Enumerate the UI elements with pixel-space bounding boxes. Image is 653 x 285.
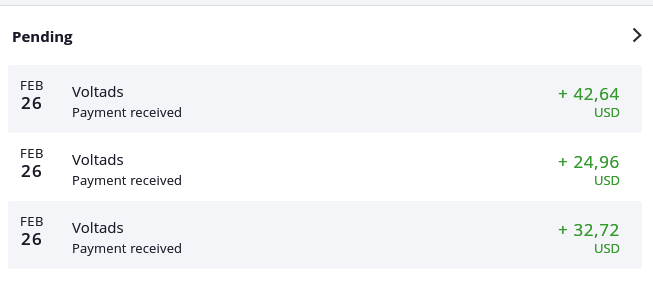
staticText: Payment received [72,103,183,121]
staticText: Voltads [72,149,124,169]
staticText: 26 [16,227,48,250]
staticText: + 24,96 [420,150,620,173]
staticText: USD [420,103,620,121]
button[interactable]: See all pending transactions [624,23,648,47]
staticText: 26 [16,159,48,182]
staticText: + 32,72 [420,218,620,241]
staticText: USD [420,171,620,189]
staticText: Payment received [72,171,183,189]
staticText: FEB [16,144,48,162]
button[interactable]: Pending [0,6,653,65]
staticText: FEB [16,76,48,94]
staticText: FEB [16,212,48,230]
staticText: Pending [12,26,73,46]
button[interactable]: FEB [8,65,642,133]
staticText: Payment received [72,239,183,257]
staticText: + 42,64 [420,82,620,105]
staticText: Voltads [72,217,124,237]
button[interactable]: FEB [8,133,642,201]
button[interactable]: FEB [8,201,642,269]
staticText: USD [420,239,620,257]
staticText: Voltads [72,81,124,101]
staticText: 26 [16,91,48,114]
